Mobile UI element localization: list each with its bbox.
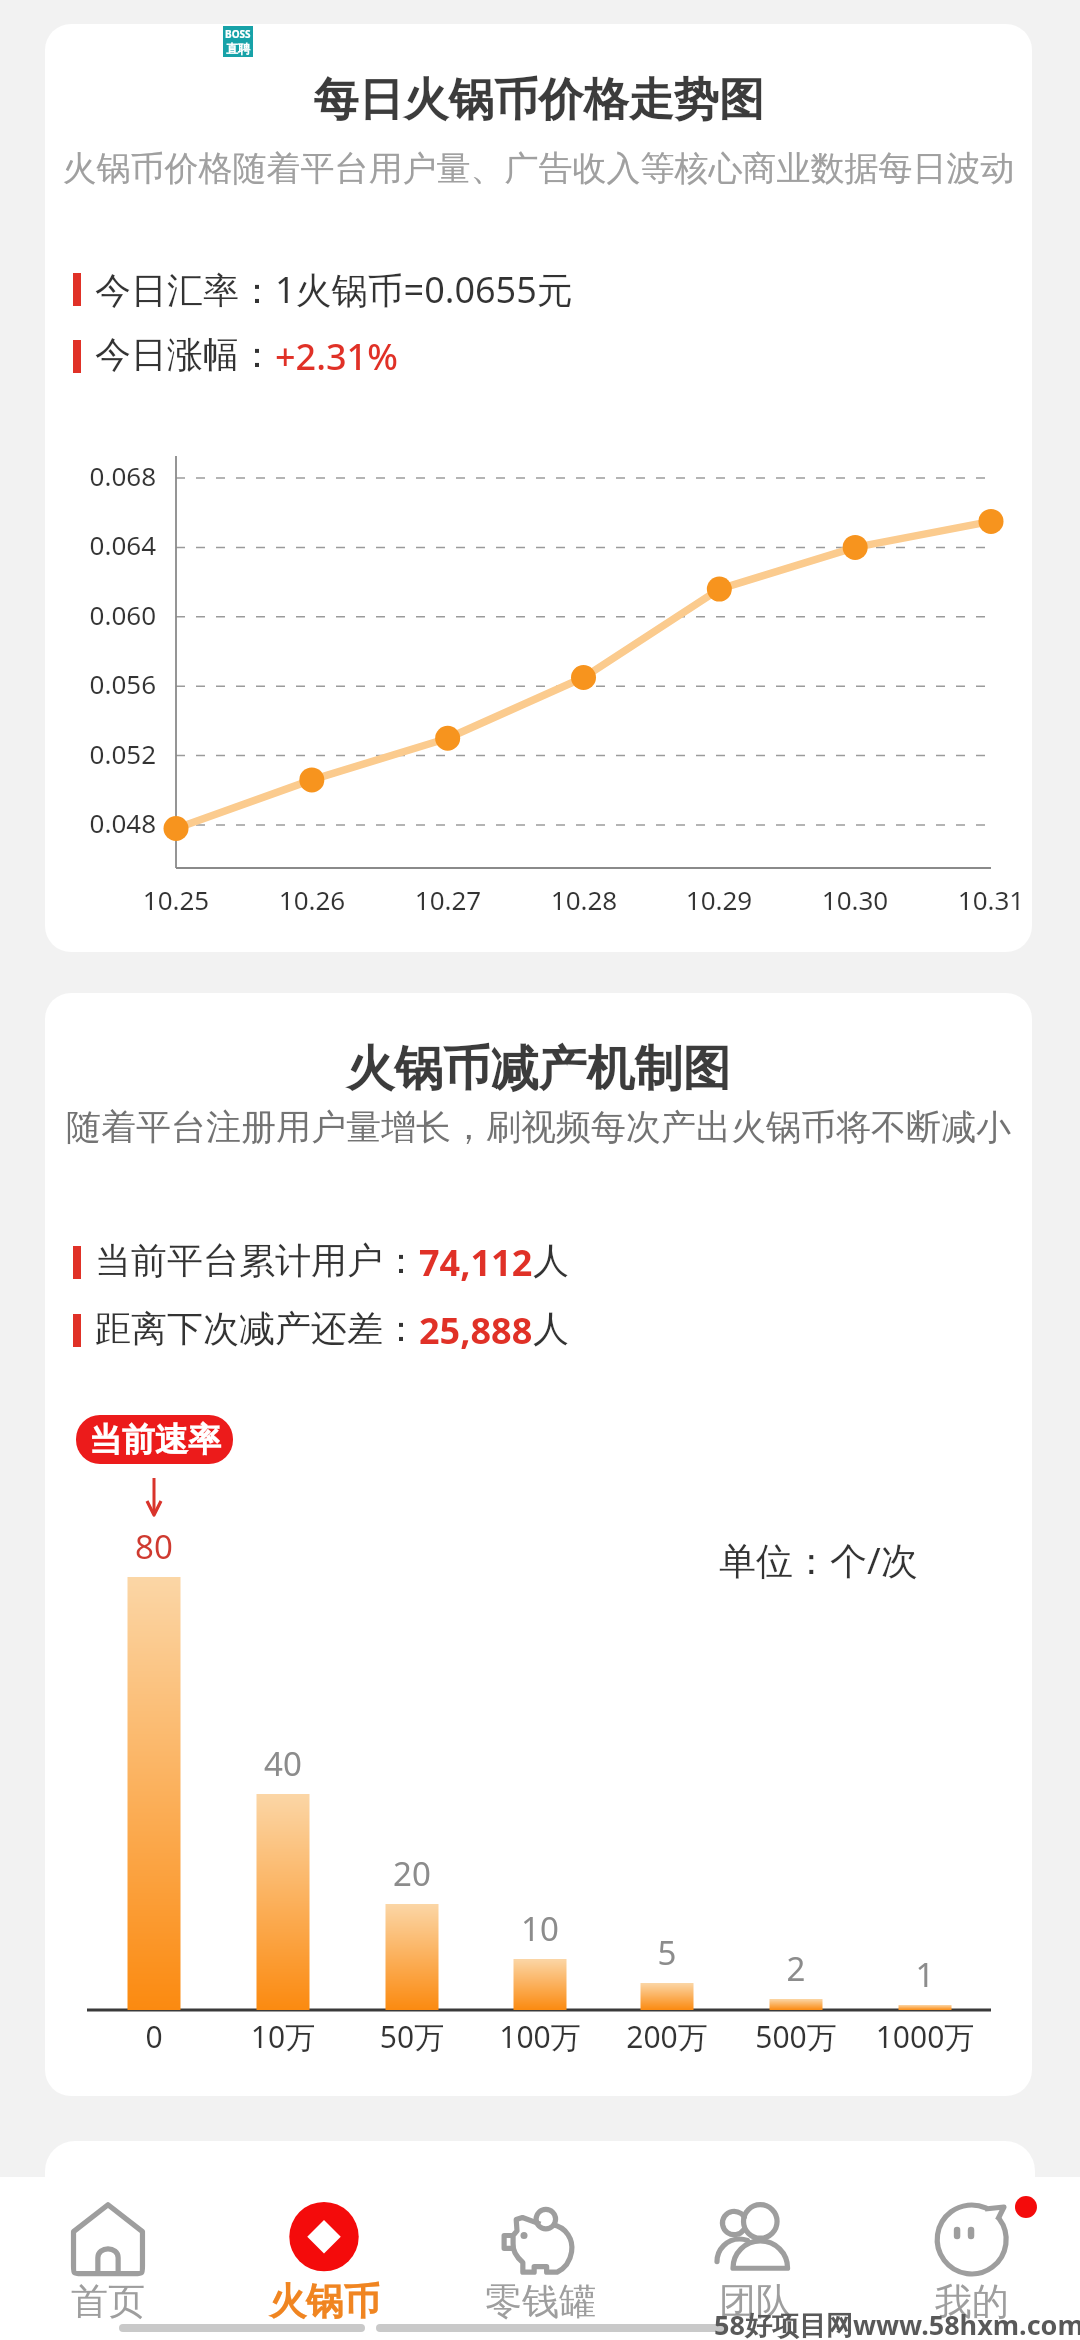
staticText: 10.29 (659, 882, 779, 917)
staticText: 0 (84, 2016, 224, 2057)
staticText: 10.27 (388, 882, 508, 917)
staticText: 火锅币减产机制图 (45, 1039, 1032, 1099)
other: 首页 (69, 2200, 147, 2278)
button[interactable]: 火锅币 (216, 2200, 432, 2325)
staticText: 人 (533, 1306, 569, 1351)
staticText: 10.30 (795, 882, 915, 917)
staticText: 0.064 (45, 527, 156, 562)
staticText: 80 (94, 1524, 214, 1569)
staticText: 团队 (719, 2278, 793, 2325)
other: 火锅币 (285, 2200, 363, 2278)
staticText: 首页 (71, 2278, 145, 2325)
other: 零钱罐 (501, 2200, 579, 2278)
staticText: 我的 (935, 2278, 1009, 2325)
staticText: 2 (736, 1946, 856, 1991)
staticText: 每日火锅币价格走势图 (45, 72, 1032, 129)
staticText: 单位：个/次 (719, 1534, 918, 1585)
staticText: 0.060 (45, 597, 156, 632)
staticText: 10.25 (116, 882, 236, 917)
staticText: 火锅币 (269, 2278, 380, 2325)
staticText: 今日汇率：1火锅币=0.0655元 (95, 265, 573, 314)
staticText: 10 (480, 1906, 600, 1951)
staticText: 100万 (470, 2016, 610, 2057)
other: 我的 (933, 2200, 1011, 2278)
staticText: 50万 (342, 2016, 482, 2057)
staticText: 距离下次减产还差： (95, 1306, 419, 1351)
staticText: 零钱罐 (485, 2278, 596, 2325)
button[interactable]: 首页 (0, 2200, 216, 2325)
staticText: 1 (865, 1952, 985, 1997)
staticText: 0.068 (45, 458, 156, 493)
staticText: 10.26 (252, 882, 372, 917)
staticText: 10万 (213, 2016, 353, 2057)
staticText: 直聘 (226, 41, 250, 56)
button[interactable]: 零钱罐 (432, 2200, 648, 2325)
staticText: 今日涨幅： (95, 332, 275, 377)
staticText: 40 (223, 1741, 343, 1786)
staticText: 10.31 (931, 882, 1032, 917)
staticText: 0.052 (45, 736, 156, 771)
staticText: 人 (533, 1238, 569, 1283)
staticText: 58好项目网www.58hxm.com (714, 2306, 1080, 2340)
staticText: 10.28 (524, 882, 644, 917)
staticText: 1000万 (855, 2016, 995, 2057)
staticText: BOSS (225, 27, 251, 41)
staticText: 0.056 (45, 666, 156, 701)
staticText: 500万 (726, 2016, 866, 2057)
staticText: 当前平台累计用户： (95, 1238, 419, 1283)
staticText: 74,112 (419, 1238, 533, 1287)
staticText: 0.048 (45, 805, 156, 840)
button[interactable]: 我的 (864, 2200, 1080, 2325)
staticText: 25,888 (419, 1306, 533, 1355)
staticText: 200万 (597, 2016, 737, 2057)
staticText: 随着平台注册用户量增长，刷视频每次产出火锅币将不断减小 (45, 1105, 1032, 1149)
button[interactable]: 团队 (648, 2200, 864, 2325)
staticText: 20 (352, 1851, 472, 1896)
staticText: +2.31% (275, 332, 398, 381)
staticText: 火锅币价格随着平台用户量、广告收入等核心商业数据每日波动 (45, 147, 1032, 190)
staticText: 5 (607, 1930, 727, 1975)
staticText: 当前速率 (89, 1419, 221, 1461)
other: 团队 (717, 2200, 795, 2278)
